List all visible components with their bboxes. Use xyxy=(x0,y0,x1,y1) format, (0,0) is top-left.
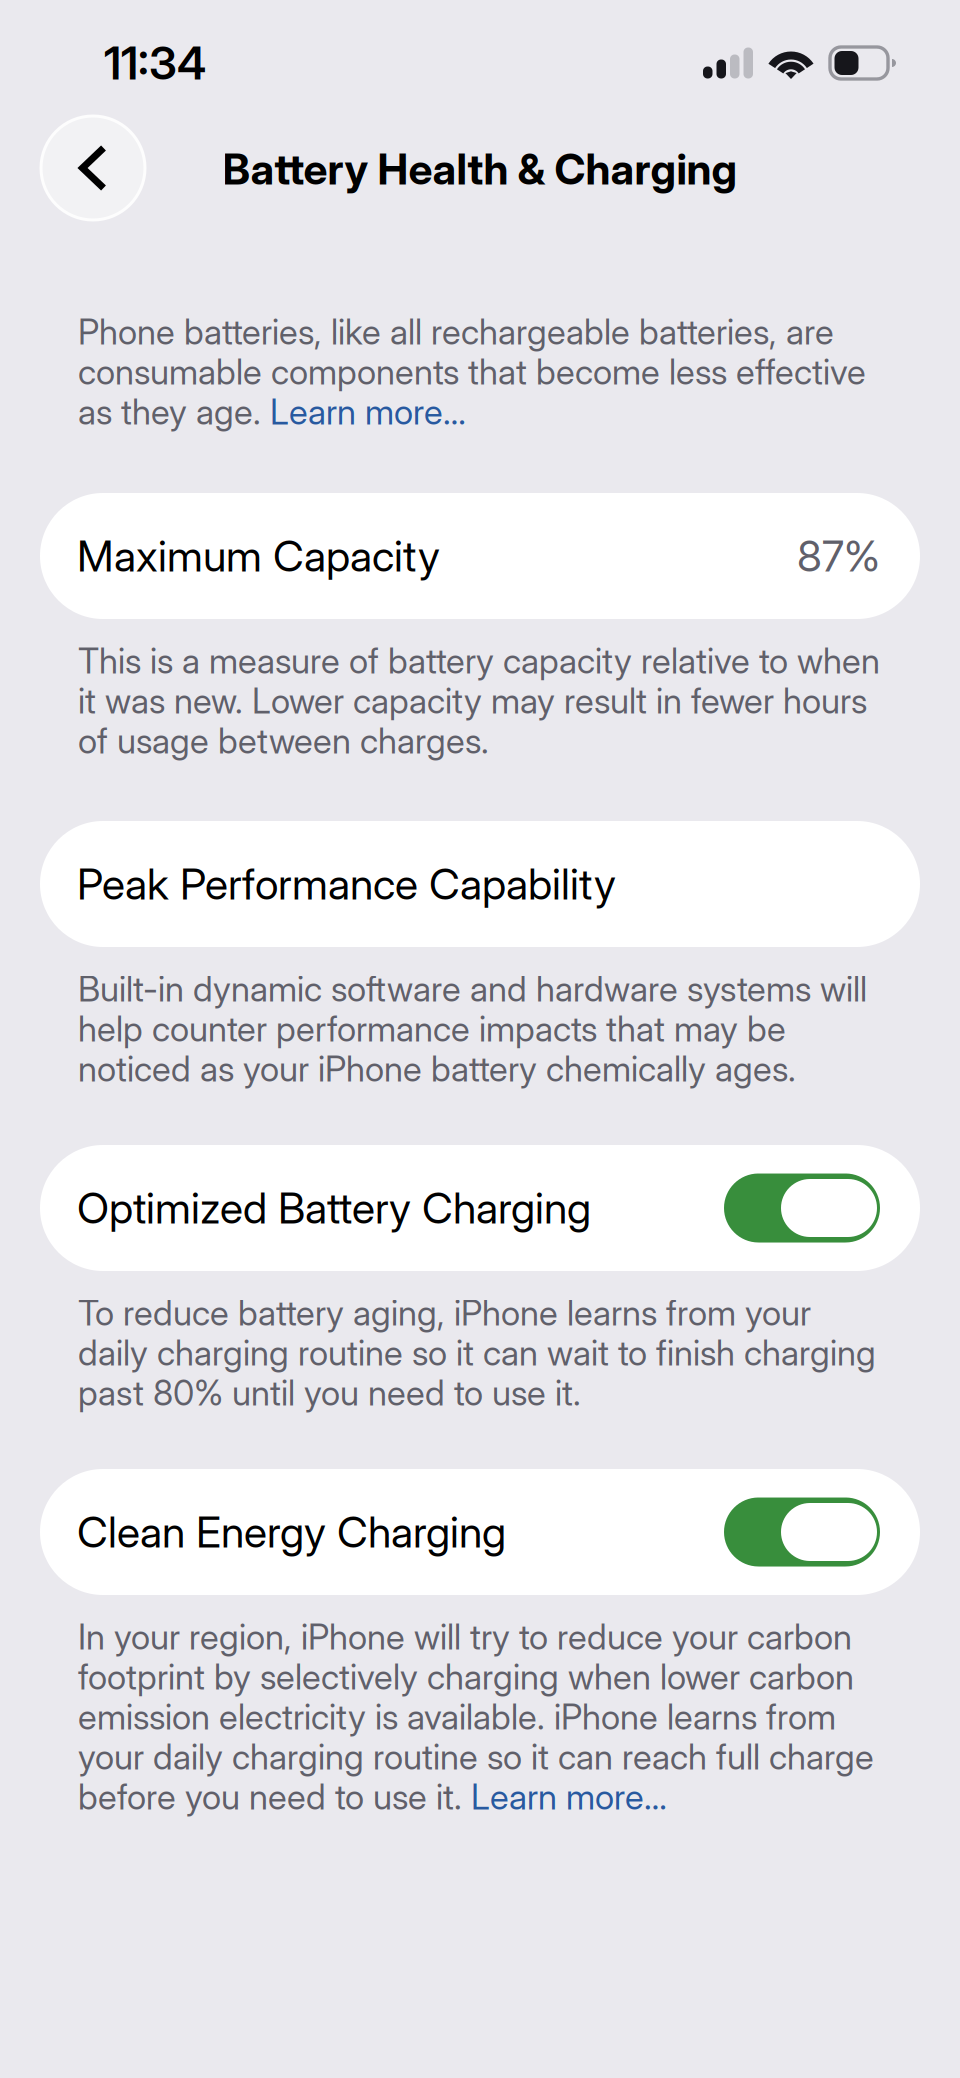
button[interactable]: Back xyxy=(40,115,146,221)
staticText: Built-in dynamic software and hardware s… xyxy=(78,968,867,1010)
staticText: To reduce battery aging, iPhone learns f… xyxy=(78,1292,811,1334)
staticText: daily charging routine so it can wait to… xyxy=(78,1332,876,1374)
staticText: Peak Performance Capability xyxy=(77,858,616,910)
staticText: help counter performance impacts that ma… xyxy=(78,1008,786,1050)
staticText: 87% xyxy=(797,530,880,582)
staticText: Battery Health & Charging xyxy=(222,143,737,195)
staticText: Phone batteries, like all rechargeable b… xyxy=(78,311,834,353)
staticText: of usage between charges. xyxy=(78,720,489,762)
staticText: before you need to use it. xyxy=(78,1776,471,1818)
staticText: emission electricity is available. iPhon… xyxy=(78,1696,836,1738)
staticText: consumable components that become less e… xyxy=(78,351,866,393)
staticText: it was new. Lower capacity may result in… xyxy=(78,680,867,722)
staticText: your daily charging routine so it can re… xyxy=(78,1736,874,1778)
staticText: Maximum Capacity xyxy=(77,530,440,582)
staticText: This is a measure of battery capacity re… xyxy=(78,640,880,682)
staticText: Learn more… xyxy=(270,391,466,433)
staticText: Learn more… xyxy=(471,1776,667,1818)
staticText: as they age. xyxy=(78,391,270,433)
staticText: footprint by selectively charging when l… xyxy=(78,1656,854,1698)
button[interactable]: Clean Energy Charging xyxy=(724,1497,880,1566)
button[interactable]: Optimized Battery Charging xyxy=(724,1173,880,1242)
button[interactable]: Maximum Capacity xyxy=(0,493,960,619)
staticText: past 80% until you need to use it. xyxy=(78,1372,581,1414)
staticText: 11:34 xyxy=(104,36,206,90)
button[interactable]: Peak Performance Capability xyxy=(0,821,960,947)
staticText: Optimized Battery Charging xyxy=(77,1182,591,1234)
staticText: Clean Energy Charging xyxy=(77,1506,506,1558)
staticText: In your region, iPhone will try to reduc… xyxy=(78,1616,852,1658)
staticText: noticed as your iPhone battery chemicall… xyxy=(78,1048,796,1090)
